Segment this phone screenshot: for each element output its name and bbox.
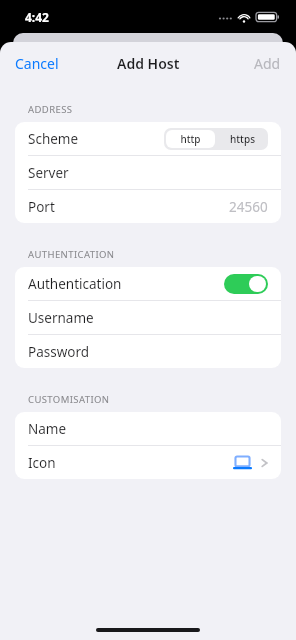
staticText: Name [28, 420, 67, 438]
staticText: Add [254, 54, 281, 73]
staticText: CUSTOMISATION [28, 393, 110, 406]
staticText: http [180, 132, 201, 146]
staticText: https [230, 132, 255, 146]
staticText: ADDRESS [28, 103, 73, 116]
staticText: Password [28, 343, 90, 361]
button[interactable]: Icon [15, 446, 281, 479]
staticText: Add Host [117, 54, 180, 73]
staticText: Icon [28, 454, 56, 472]
staticText: Port [28, 198, 55, 216]
staticText: 24560 [229, 198, 268, 216]
staticText: Username [28, 309, 94, 327]
staticText: AUTHENTICATION [28, 248, 115, 261]
button[interactable]: https [216, 128, 268, 150]
staticText: Authentication [28, 275, 122, 293]
other: Laptop icon [233, 455, 252, 470]
button[interactable]: Cancel [0, 46, 74, 81]
staticText: Scheme [28, 130, 79, 148]
button[interactable]: http [164, 128, 216, 150]
button[interactable]: Authentication toggle, on [224, 274, 268, 294]
staticText: 4:42 [25, 9, 49, 25]
staticText: Server [28, 164, 69, 182]
staticText: Cancel [15, 54, 59, 73]
button[interactable]: Add [239, 46, 296, 81]
